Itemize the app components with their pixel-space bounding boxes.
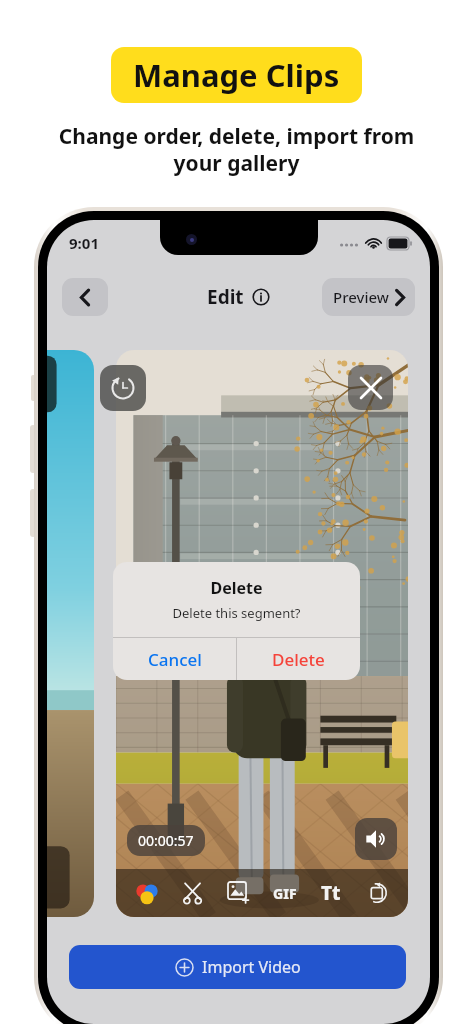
staticText: 00:00:57 <box>138 831 194 850</box>
button[interactable]: 00:00:57 <box>127 825 205 856</box>
button[interactable]: Volume <box>355 818 397 860</box>
staticText: Tt <box>321 880 341 906</box>
button[interactable]: Back <box>62 278 108 316</box>
button[interactable]: Cancel <box>113 638 236 680</box>
button[interactable]: GIF <box>268 876 302 910</box>
button[interactable]: Tt <box>314 876 348 910</box>
button[interactable]: Add media <box>222 876 256 910</box>
staticText: Delete this segment? <box>113 604 360 622</box>
staticText: Delete <box>272 648 325 671</box>
staticText: Import Video <box>202 956 301 978</box>
button[interactable]: Import Video <box>69 945 406 989</box>
staticText: Edit <box>207 284 244 310</box>
button[interactable]: Close <box>348 365 393 410</box>
staticText: GIF <box>273 884 297 903</box>
staticText: Cancel <box>148 648 202 671</box>
button[interactable]: Info <box>251 287 271 307</box>
button[interactable]: Delete <box>237 638 360 680</box>
button[interactable]: Transform <box>360 876 394 910</box>
button[interactable]: Preview <box>322 278 415 316</box>
button[interactable] <box>47 350 94 917</box>
staticText: Preview <box>333 287 389 307</box>
button[interactable]: Trim <box>176 876 210 910</box>
button[interactable]: History <box>100 365 146 411</box>
staticText: Manage Clips <box>133 54 340 96</box>
staticText: Delete <box>113 577 360 599</box>
staticText: 9:01 <box>69 233 99 253</box>
button[interactable]: Filters <box>130 876 164 910</box>
staticText: Change order, delete, import from your g… <box>16 122 457 177</box>
